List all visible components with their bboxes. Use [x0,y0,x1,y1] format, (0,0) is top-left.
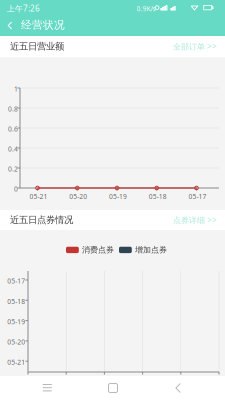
button[interactable]: 点券详细 >> [173,215,217,225]
button[interactable]: 增加点券 [119,245,167,255]
staticText: 05-19 [7,317,25,326]
staticText: 05-21 [30,192,48,201]
staticText: 0 [14,184,18,193]
staticText: 05-18 [149,192,167,201]
button[interactable]: 消费点券 [66,245,114,255]
staticText: 近五日营业额 [10,41,64,52]
staticText: 增加点券 [135,245,167,255]
staticText: 点券详细 >> [173,215,217,225]
staticText: 上午7:26 [7,3,40,14]
staticText: 0.8 [8,104,18,113]
staticText: 1 [14,84,18,93]
button[interactable]: Home [94,376,131,400]
staticText: 05-20 [69,192,87,201]
staticText: 全部订单 >> [173,41,217,52]
staticText: 05-21 [7,358,25,367]
staticText: 05-17 [7,277,25,285]
staticText: 0.9K/s [136,4,155,13]
staticText: 近五日点券情况 [10,214,73,226]
button[interactable]: Back [160,376,197,400]
staticText: 05-19 [109,192,127,201]
staticText: 0.6 [8,124,18,133]
staticText: 0.2 [8,164,18,173]
button[interactable]: 全部订单 >> [173,41,217,52]
button[interactable]: Back [0,15,18,36]
staticText: 05-20 [7,337,25,346]
staticText: 消费点券 [82,245,114,255]
button[interactable]: Recents [28,376,66,400]
staticText: 经营状况 [21,18,65,32]
staticText: 0.4 [8,144,18,153]
staticText: 05-18 [7,297,25,306]
staticText: 05-17 [189,192,207,201]
